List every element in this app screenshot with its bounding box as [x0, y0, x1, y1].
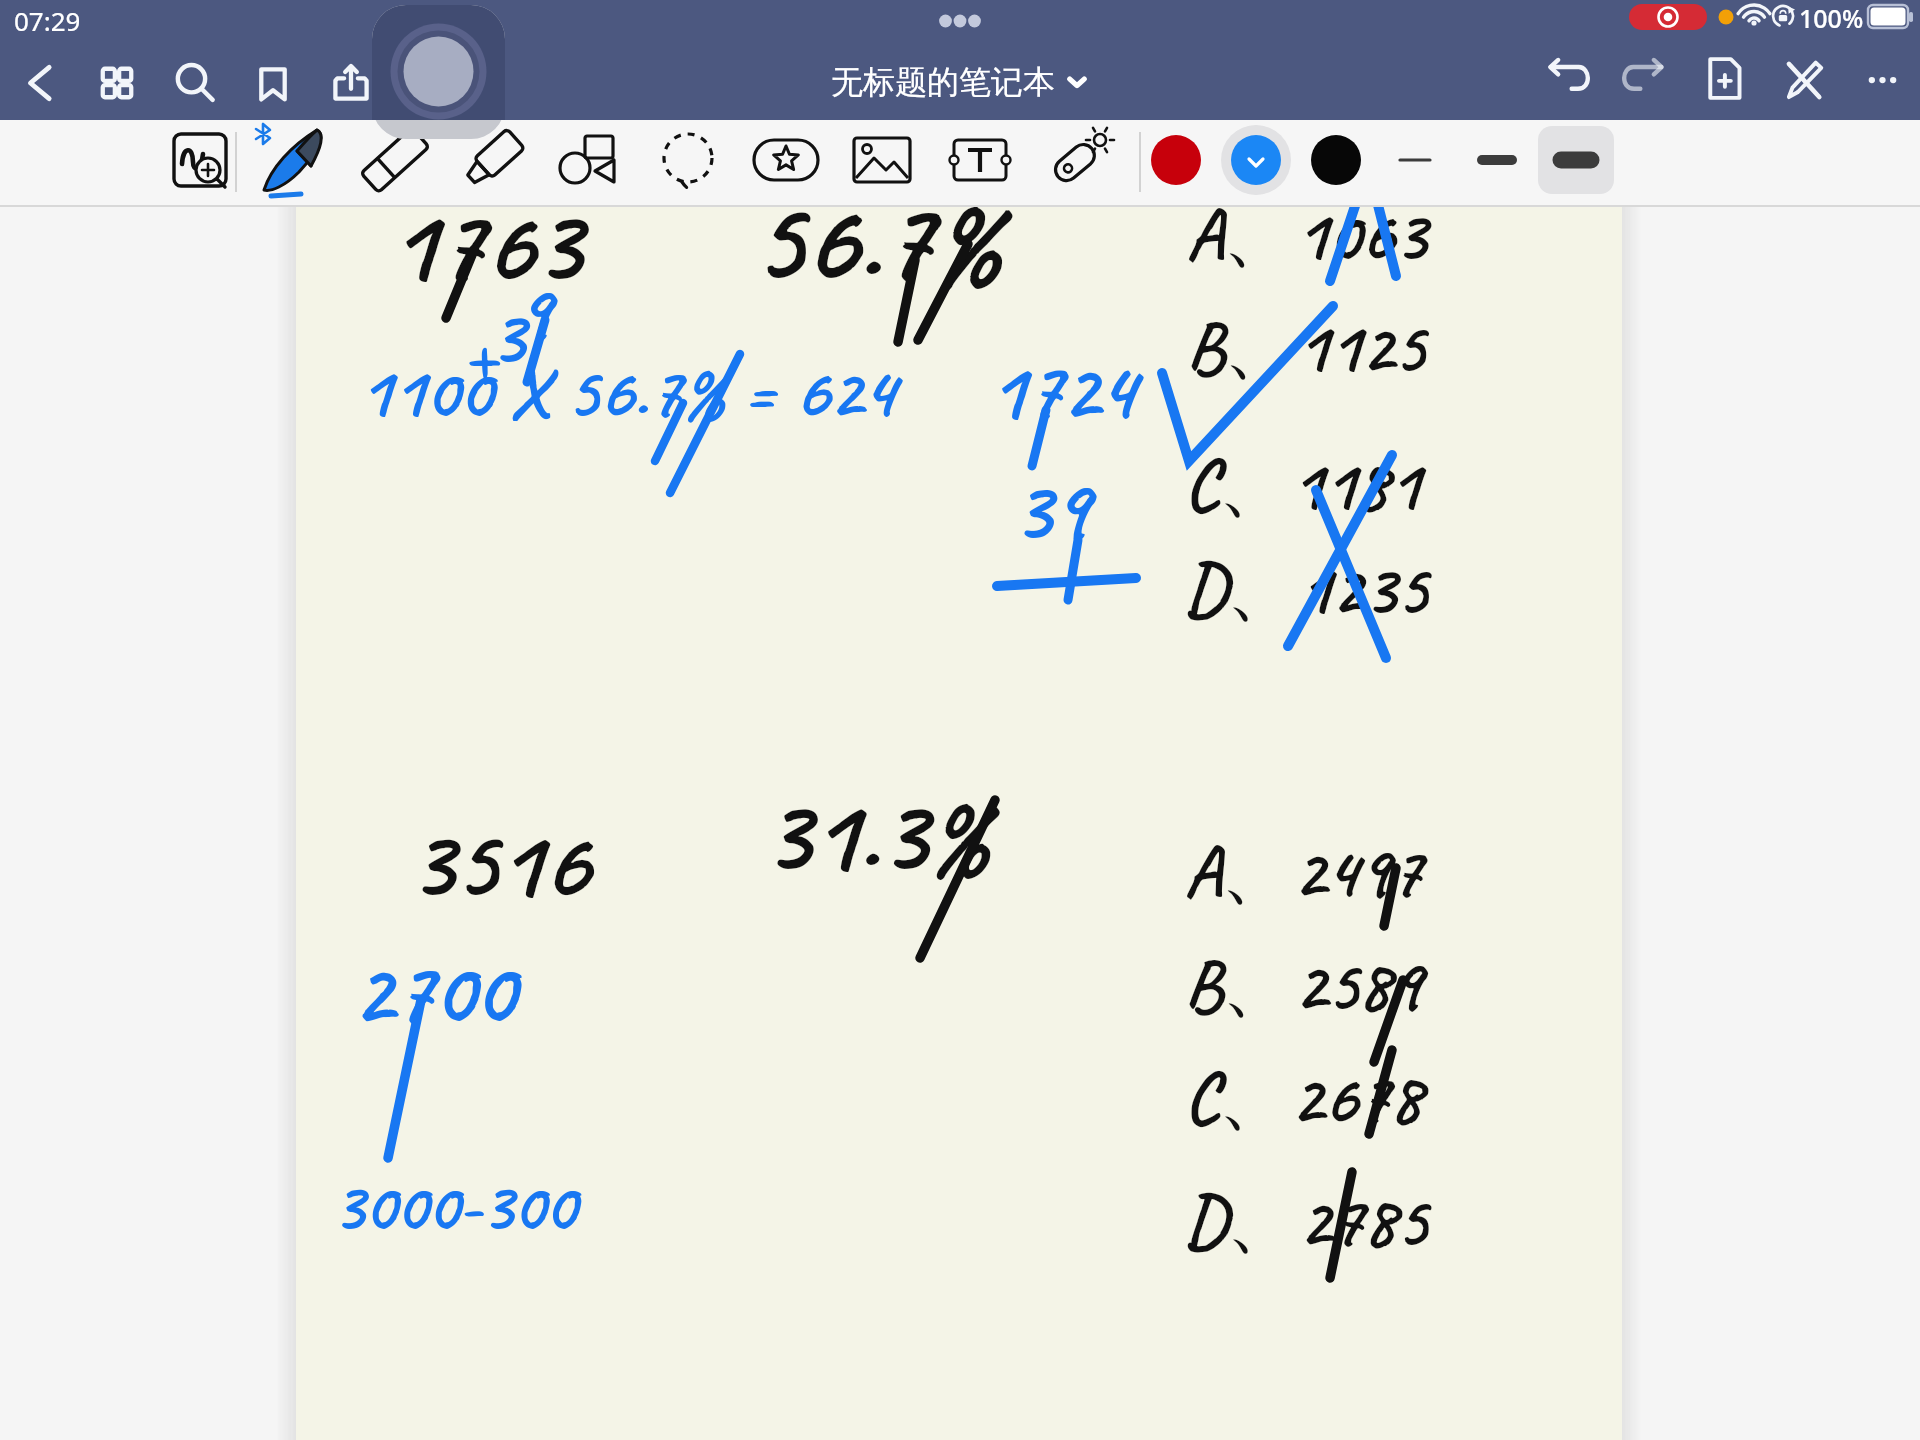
- button[interactable]: Shapes: [548, 123, 628, 203]
- staticText: 9: [516, 264, 551, 362]
- staticText: D、1235: [1184, 544, 1427, 635]
- button[interactable]: Laser pointer: [1043, 123, 1123, 203]
- button[interactable]: Undo: [1527, 39, 1606, 118]
- staticText: +: [462, 305, 497, 403]
- button[interactable]: Lasso select: [649, 123, 729, 203]
- staticText: 1724: [988, 339, 1136, 442]
- button[interactable]: Note page canvas: [296, 207, 1622, 1440]
- button[interactable]: New page: [1685, 39, 1764, 118]
- button[interactable]: Sticker: [749, 123, 829, 203]
- staticText: 无标题的笔记本: [831, 62, 1055, 102]
- button[interactable]: Redo: [1606, 39, 1685, 118]
- button[interactable]: Back: [0, 44, 78, 122]
- staticText: 56.7%: [752, 168, 1002, 314]
- staticText: C、1181: [1184, 440, 1420, 531]
- staticText: C、2678: [1184, 1053, 1422, 1144]
- button[interactable]: Pen: [254, 123, 334, 203]
- staticText: 39: [1012, 456, 1089, 564]
- staticText: 100%: [1799, 1, 1864, 35]
- staticText: 1100 X 56.7% = 624: [358, 345, 896, 438]
- button[interactable]: Bookmark: [234, 44, 312, 122]
- staticText: 07:29: [14, 3, 81, 38]
- button[interactable]: Thick stroke: [1538, 123, 1614, 199]
- button[interactable]: Pages: [78, 44, 156, 122]
- staticText: A、2497: [1184, 827, 1422, 918]
- button[interactable]: Share: [312, 44, 390, 122]
- button[interactable]: Thin stroke: [1377, 123, 1453, 199]
- button[interactable]: Search: [156, 44, 234, 122]
- button[interactable]: More: [1843, 39, 1920, 118]
- staticText: B、1125: [1186, 302, 1425, 393]
- staticText: A、1063: [1186, 190, 1426, 281]
- button[interactable]: Insert image: [845, 123, 925, 203]
- staticText: 2700: [352, 936, 514, 1049]
- button[interactable]: Red: [1138, 123, 1214, 199]
- button[interactable]: Zoom writing: [159, 123, 239, 203]
- staticText: 3000-300: [332, 1162, 576, 1250]
- staticText: 3516: [408, 800, 589, 926]
- staticText: 31.3%: [762, 768, 990, 902]
- button[interactable]: Text box: [943, 123, 1023, 203]
- button[interactable]: 无标题的笔记本: [831, 62, 1089, 102]
- staticText: D、2785: [1184, 1176, 1427, 1267]
- staticText: 3: [489, 287, 525, 385]
- button[interactable]: Medium stroke: [1458, 123, 1534, 199]
- button[interactable]: Pen off: [1764, 39, 1843, 118]
- staticText: B、2589: [1184, 940, 1422, 1031]
- staticText: 1763: [388, 178, 581, 312]
- button[interactable]: Highlighter: [453, 123, 533, 203]
- button[interactable]: Black: [1298, 123, 1374, 199]
- button[interactable]: Blue (selected): [1218, 123, 1294, 199]
- button[interactable]: Eraser: [355, 123, 435, 203]
